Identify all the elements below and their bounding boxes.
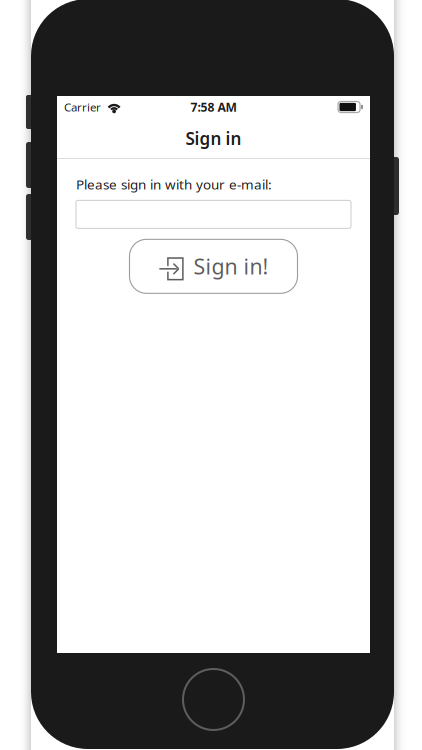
button[interactable]: Sign in! bbox=[129, 239, 297, 293]
staticText: Carrier bbox=[64, 99, 101, 115]
staticText: Sign in bbox=[185, 127, 241, 150]
staticText: Sign in! bbox=[193, 252, 268, 281]
staticText: Please sign in with your e-mail: bbox=[76, 175, 272, 193]
staticText: 7:58 AM bbox=[190, 99, 236, 115]
